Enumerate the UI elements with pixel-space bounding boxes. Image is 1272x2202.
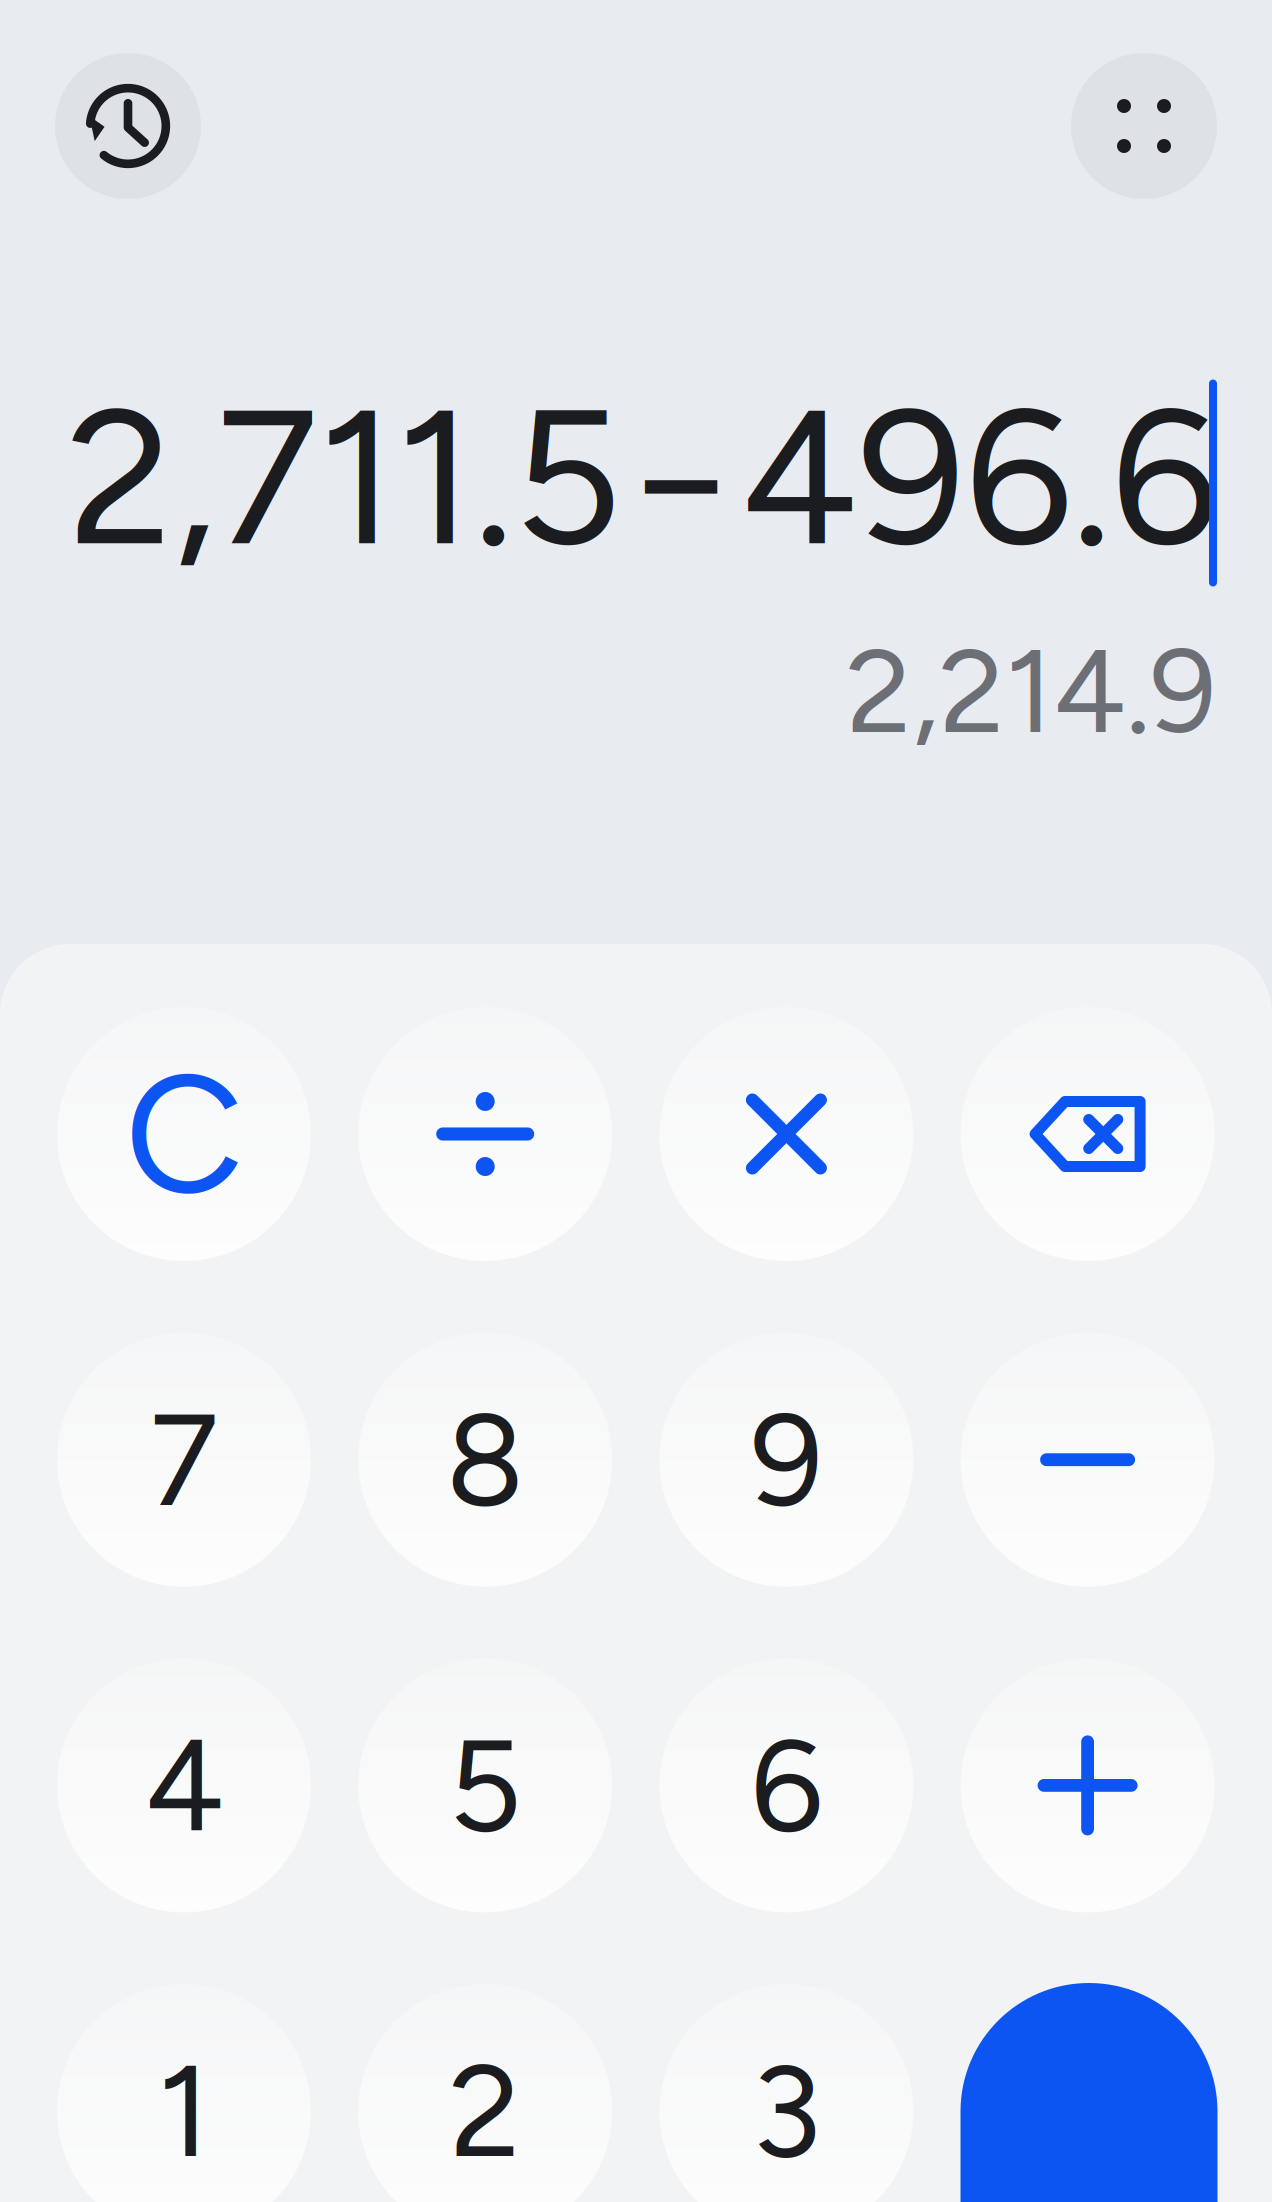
button[interactable]: Minus: [961, 1333, 1215, 1587]
staticText: 3: [751, 2034, 821, 2188]
staticText: 9: [750, 1383, 822, 1536]
button[interactable]: 2: [358, 1984, 612, 2202]
staticText: 7: [149, 1383, 218, 1536]
staticText: 5: [448, 1709, 522, 1862]
button[interactable]: Delete: [961, 1007, 1215, 1261]
button[interactable]: Equals: [960, 1983, 1217, 2202]
button[interactable]: 5: [358, 1658, 612, 1912]
button[interactable]: Divide: [358, 1007, 612, 1261]
staticText: 6: [750, 1709, 822, 1862]
staticText: 1: [157, 2034, 210, 2188]
button[interactable]: Plus: [961, 1658, 1215, 1912]
staticText: C: [124, 1035, 243, 1233]
button[interactable]: 4: [57, 1658, 311, 1912]
staticText: 2: [449, 2034, 521, 2188]
button[interactable]: 1: [57, 1984, 311, 2202]
button[interactable]: Multiply: [659, 1007, 913, 1261]
button[interactable]: 8: [358, 1333, 612, 1587]
button[interactable]: History: [55, 53, 201, 199]
staticText: 2,711.5−496.6: [67, 363, 1218, 591]
button[interactable]: Clear: [57, 1007, 311, 1261]
button[interactable]: More options: [1071, 53, 1217, 199]
staticText: 8: [446, 1383, 525, 1536]
staticText: 4: [144, 1709, 223, 1862]
button[interactable]: 9: [659, 1333, 913, 1587]
button[interactable]: 6: [659, 1658, 913, 1912]
button[interactable]: 3: [659, 1984, 913, 2202]
staticText: 2,214.9: [846, 621, 1216, 761]
button[interactable]: 7: [57, 1333, 311, 1587]
